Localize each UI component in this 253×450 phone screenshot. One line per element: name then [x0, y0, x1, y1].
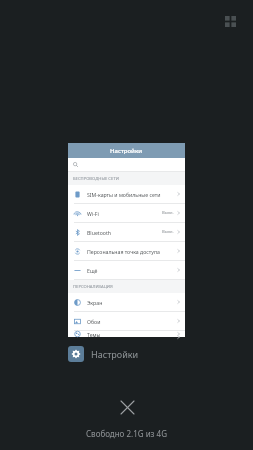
button[interactable]: Темы: [68, 331, 185, 337]
button[interactable]: Настройки: [68, 343, 139, 365]
staticText: Темы: [87, 331, 101, 337]
staticText: SIM-карты и мобильные сети: [87, 191, 161, 198]
button[interactable]: Экран: [68, 293, 185, 311]
staticText: ПЕРСОНАЛИЗАЦИЯ: [73, 284, 113, 290]
staticText: БЕСПРОВОДНЫЕ СЕТИ: [73, 176, 119, 182]
staticText: Выкл.: [162, 229, 174, 235]
button[interactable]: Персональная точка доступа: [68, 242, 185, 260]
button[interactable]: Wi-Fi: [68, 204, 185, 222]
staticText: Персональная точка доступа: [87, 248, 160, 255]
button[interactable]: Bluetooth: [68, 223, 185, 241]
staticText: Свободно 2.1G из 4G: [86, 428, 167, 439]
staticText: Выкл.: [162, 210, 174, 216]
button[interactable]: Close all: [113, 393, 141, 421]
button[interactable]: Grid view: [217, 8, 243, 34]
staticText: Wi-Fi: [87, 210, 99, 217]
button[interactable]: [68, 158, 185, 171]
staticText: Обои: [87, 318, 101, 325]
button[interactable]: SIM-карты и мобильные сети: [68, 185, 185, 203]
staticText: Ещё: [87, 267, 98, 274]
staticText: Bluetooth: [87, 229, 112, 236]
button[interactable]: Ещё: [68, 261, 185, 279]
button[interactable]: Настройки: [68, 143, 185, 337]
staticText: Настройки: [110, 147, 143, 155]
staticText: Экран: [87, 299, 103, 306]
staticText: Настройки: [91, 348, 139, 360]
button[interactable]: Обои: [68, 312, 185, 330]
